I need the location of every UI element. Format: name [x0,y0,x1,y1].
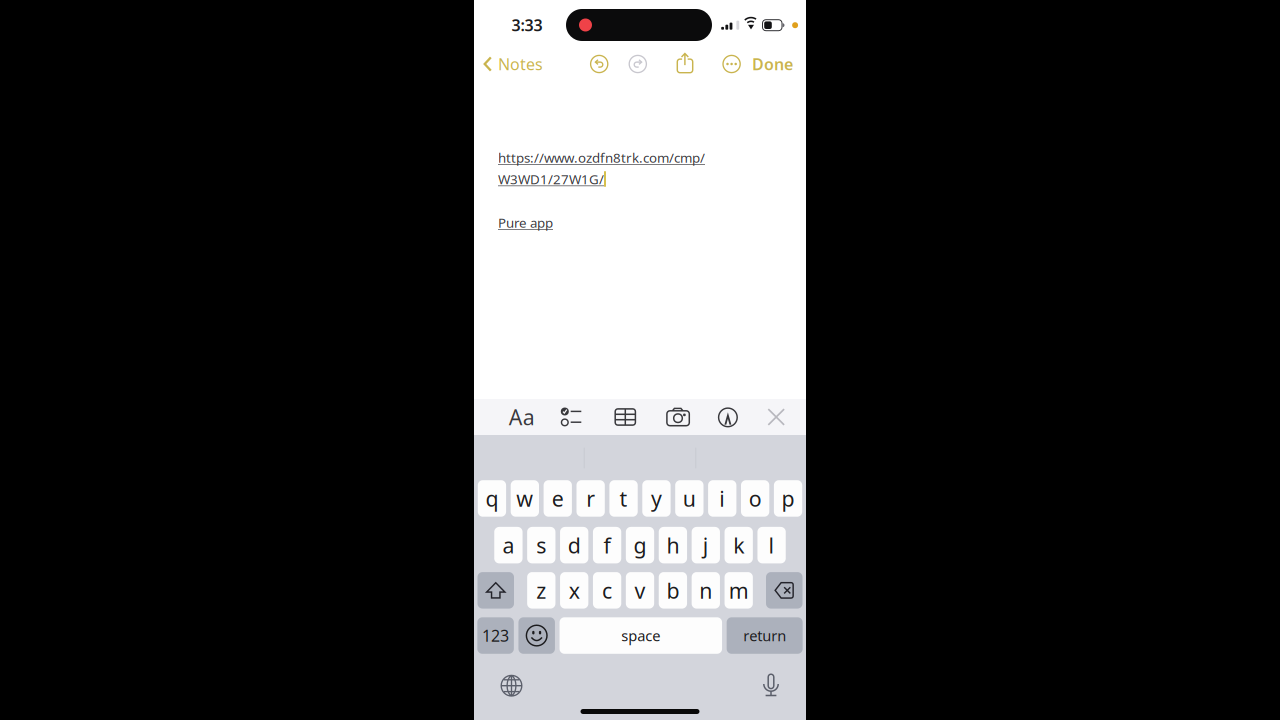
button[interactable]: x [560,572,588,609]
button[interactable]: Shift [477,572,514,609]
staticText: r [586,484,595,513]
staticText: t [619,484,627,513]
button[interactable]: Table [603,399,647,435]
button[interactable]: Share [669,47,701,79]
button[interactable]: e [544,480,572,517]
button[interactable]: b [659,572,687,609]
button[interactable]: c [593,572,621,609]
button[interactable]: f [593,527,621,563]
button[interactable]: Camera [656,399,700,435]
button[interactable]: q [478,480,506,517]
button[interactable]: r [576,480,605,517]
button[interactable]: Text format [500,399,544,435]
staticText: v [634,576,645,604]
button[interactable]: Done [751,48,793,80]
staticText: d [568,531,581,559]
button[interactable]: z [527,572,555,609]
button[interactable]: k [724,527,753,563]
staticText: 123 [482,625,509,646]
staticText: y [651,484,662,513]
button[interactable]: h [659,527,687,563]
staticText: https://www.ozdfn8trk.com/cmp/ [498,149,705,166]
staticText: e [552,484,564,513]
button[interactable]: s [527,527,555,563]
staticText: k [733,531,744,559]
button[interactable]: Dictation [750,667,792,705]
staticText: x [569,576,580,604]
staticText: s [536,531,546,559]
staticText: h [666,531,679,559]
staticText: w [516,484,533,513]
staticText: W3WD1/27W1G/ [498,170,604,188]
staticText: l [769,531,775,559]
staticText: Pure app [498,214,553,231]
button[interactable]: Next keyboard [490,667,532,705]
staticText: a [502,531,514,559]
button[interactable]: Markup [706,399,750,435]
button[interactable]: More [716,48,748,80]
staticText: f [604,531,611,559]
staticText: p [781,484,794,513]
button[interactable]: Delete [766,572,802,609]
button[interactable]: d [560,527,588,563]
staticText: g [633,531,646,559]
button[interactable]: Undo [583,48,615,80]
button[interactable]: p [774,480,802,517]
staticText: Aa [509,403,535,431]
staticText: n [699,576,712,604]
staticText: o [749,484,762,513]
button[interactable]: o [741,480,769,517]
button[interactable]: l [757,527,786,563]
button[interactable]: m [724,572,753,609]
button[interactable]: t [609,480,638,517]
button[interactable]: y [642,480,671,517]
button[interactable]: Notes [483,48,539,80]
staticText: u [683,484,696,513]
button[interactable]: 123 [477,617,514,654]
button[interactable]: return [727,617,803,654]
staticText: m [729,576,749,604]
button[interactable]: Emoji [518,617,555,654]
button[interactable]: n [692,572,720,609]
button[interactable]: u [675,480,703,517]
staticText: i [719,484,725,513]
staticText: j [703,531,709,559]
button[interactable]: w [511,480,539,517]
button[interactable]: Checklist [549,399,593,435]
button[interactable]: j [692,527,720,563]
button[interactable]: Redo [622,48,654,80]
staticText: Notes [498,53,543,75]
staticText: space [621,626,660,645]
button[interactable]: space [559,617,722,654]
button[interactable]: a [494,527,522,563]
staticText: c [602,576,612,604]
staticText: 3:33 [511,14,542,36]
staticText: z [536,576,546,604]
button[interactable]: Close [754,399,798,435]
staticText: return [743,626,786,645]
button[interactable]: v [626,572,654,609]
staticText: q [485,484,498,513]
button[interactable]: i [708,480,736,517]
staticText: Done [752,53,793,75]
button[interactable]: g [626,527,654,563]
staticText: b [666,576,679,604]
